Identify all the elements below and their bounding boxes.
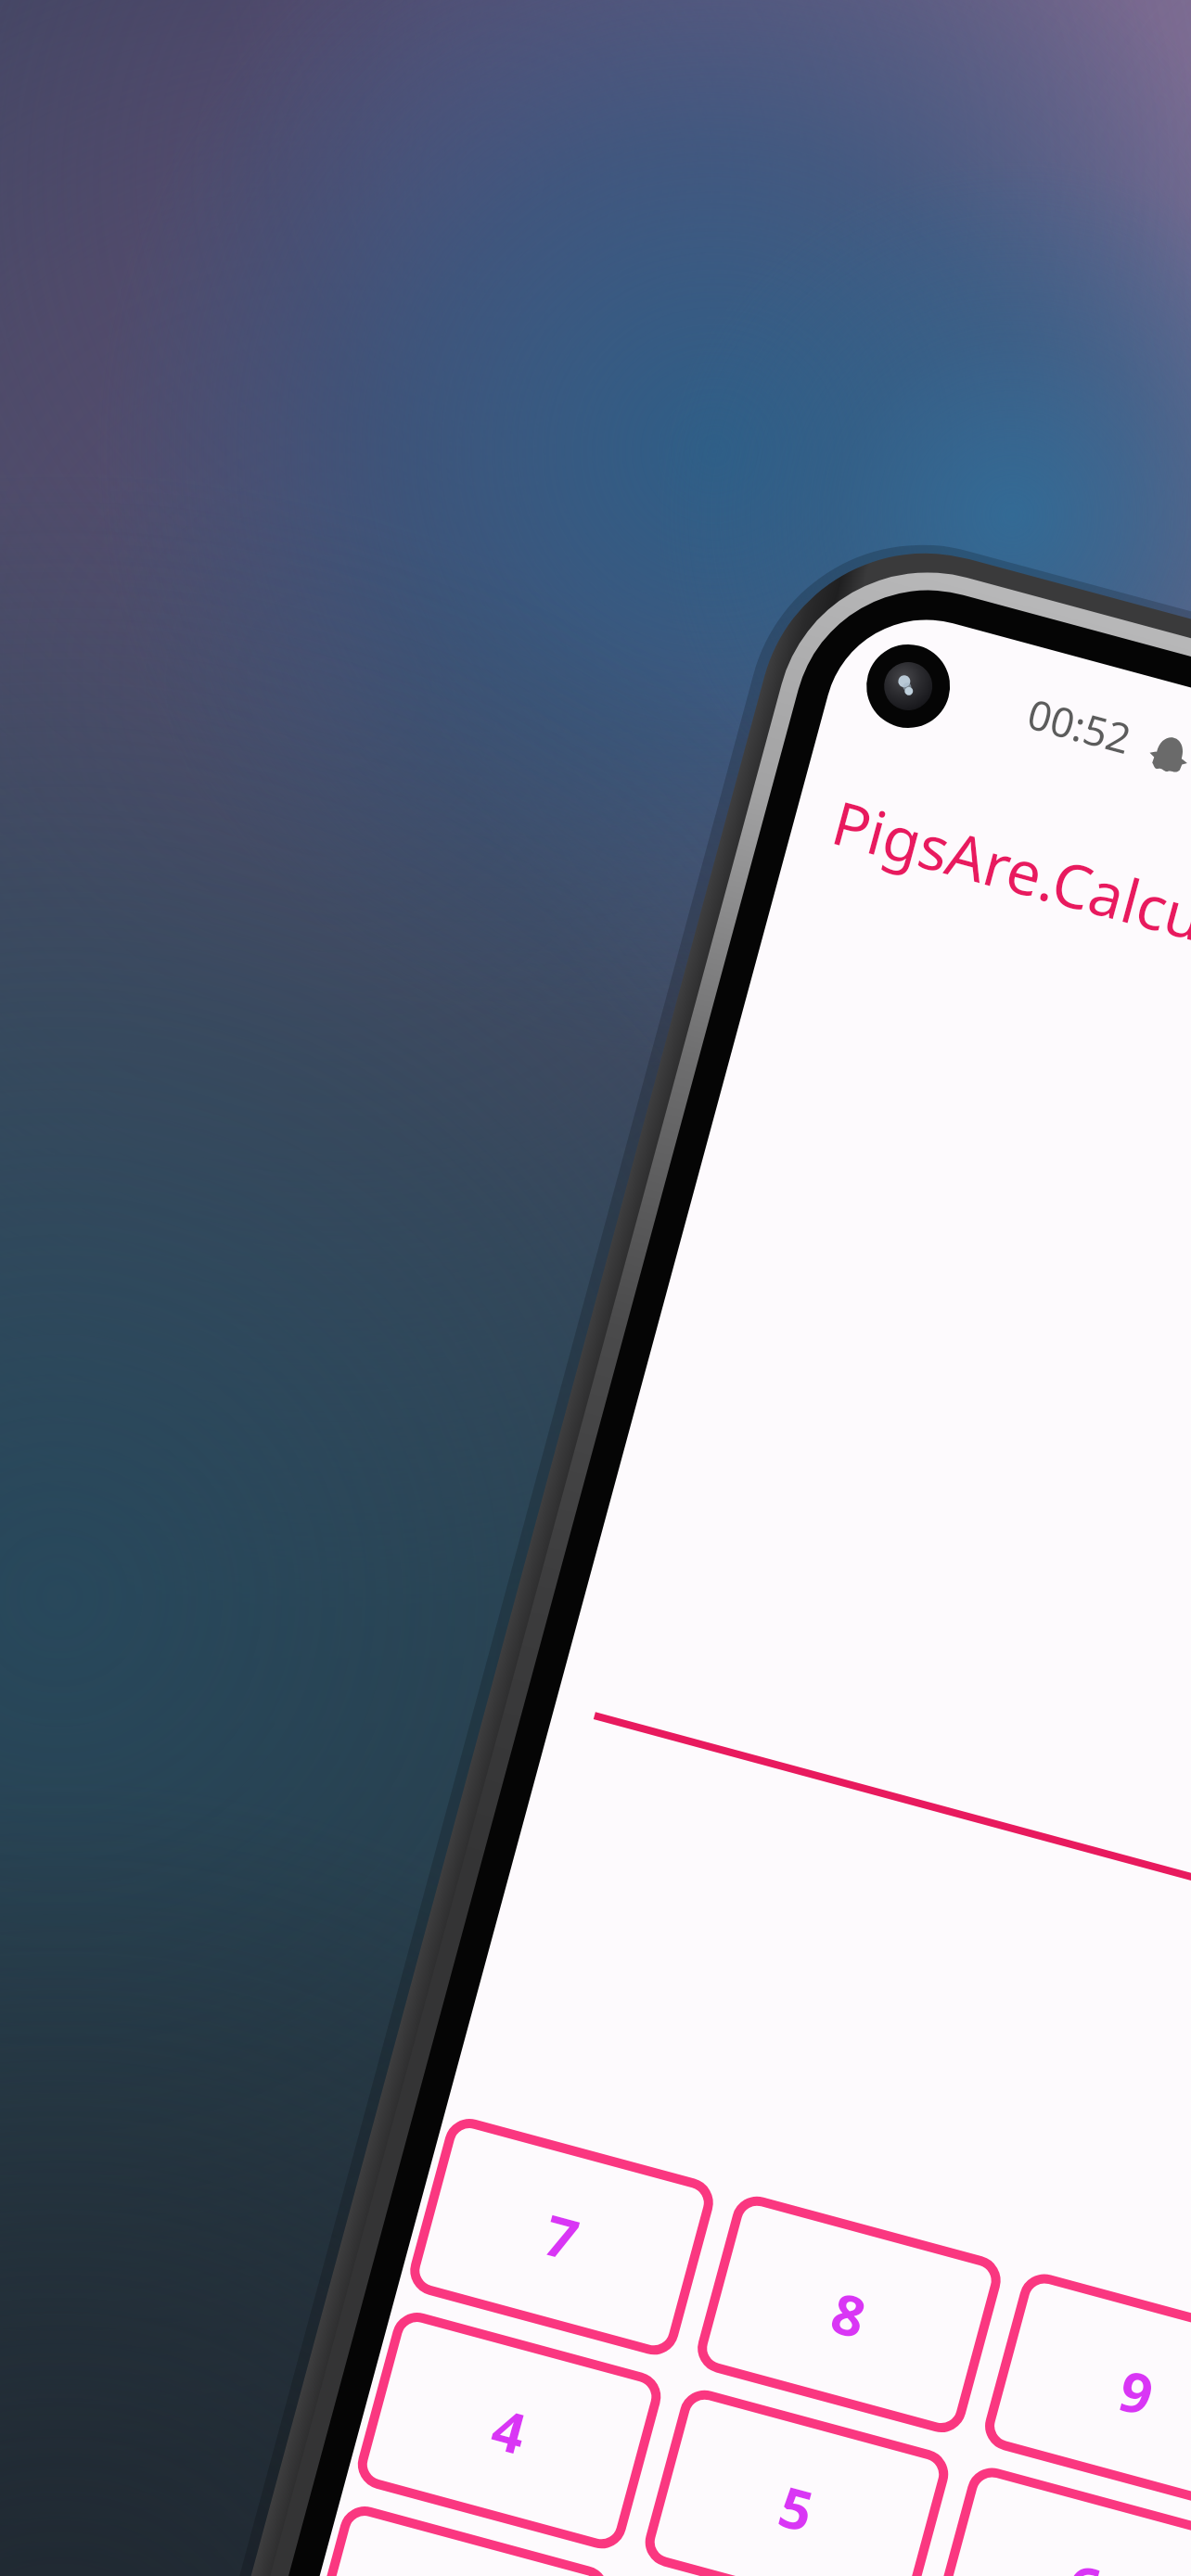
button[interactable]: Key 9	[980, 2268, 1191, 2516]
button[interactable]: Key 4	[352, 2307, 666, 2555]
button[interactable]: Key 5	[640, 2385, 954, 2576]
button[interactable]: Key 1	[300, 2501, 614, 2576]
button[interactable]: Snapchat	[1133, 714, 1191, 789]
button[interactable]: Key 8	[692, 2191, 1006, 2438]
button[interactable]: Key 6	[927, 2462, 1191, 2576]
button[interactable]	[811, 765, 1191, 1004]
button[interactable]: Key 7	[405, 2113, 719, 2360]
